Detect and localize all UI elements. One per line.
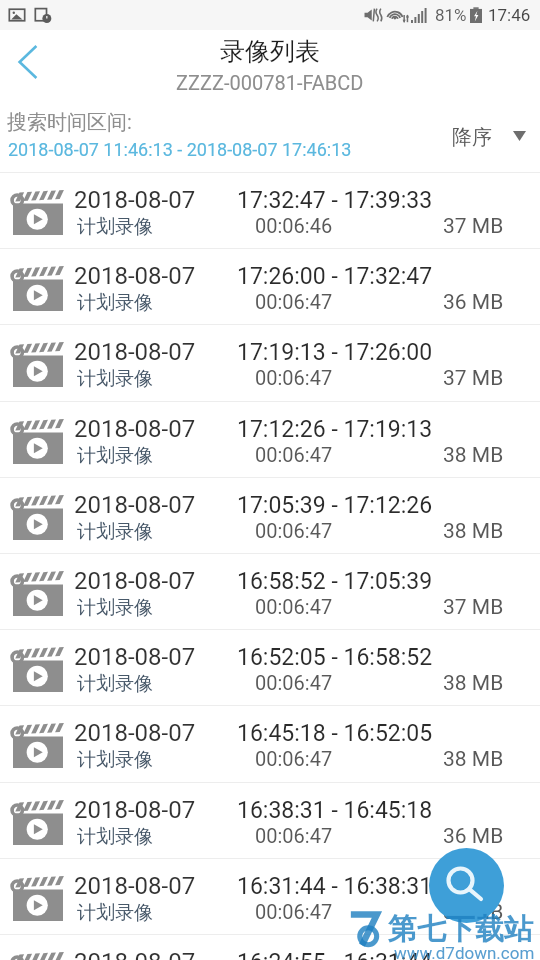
staticText: 2018-08-07 11:46:13 - 2018-08-07 17:46:1…	[8, 139, 352, 160]
staticText: 2018-08-07	[74, 796, 196, 824]
button[interactable]: 降序	[452, 125, 526, 150]
staticText: 16:31:44 - 16:38:31	[237, 873, 433, 900]
staticText: 00:06:46	[255, 214, 333, 237]
staticText: 降序	[452, 125, 492, 150]
staticText: 17:12:26 - 17:19:13	[237, 416, 433, 443]
staticText: 00:06:47	[255, 824, 333, 847]
button[interactable]: Back	[2, 36, 54, 88]
staticText: 计划录像	[77, 596, 153, 620]
staticText: 38 MB	[443, 519, 504, 544]
staticText: 计划录像	[77, 291, 153, 315]
staticText: 00:06:47	[255, 290, 333, 313]
staticText: 第七下载站	[388, 911, 533, 948]
staticText: 2018-08-07	[74, 262, 196, 290]
staticText: 计划录像	[77, 367, 153, 391]
staticText: 16:45:18 - 16:52:05	[237, 720, 433, 747]
button[interactable]: 2018-08-07	[0, 706, 540, 782]
staticText: ZZZZ-000781-FABCD	[176, 71, 364, 94]
button[interactable]: 2018-08-07	[0, 783, 540, 859]
staticText: 17:19:13 - 17:26:00	[237, 339, 433, 366]
staticText: 37 MB	[443, 595, 504, 620]
staticText: www.d7down.com	[394, 943, 535, 960]
staticText: 录像列表	[220, 36, 320, 67]
button[interactable]: 2018-08-07	[0, 402, 540, 478]
staticText: 16:58:52 - 17:05:39	[237, 568, 433, 595]
staticText: 计划录像	[77, 672, 153, 696]
staticText: 2018-08-07	[74, 643, 196, 671]
staticText: 搜索时间区间:	[7, 110, 132, 135]
staticText: 16:52:05 - 16:58:52	[237, 644, 433, 671]
button[interactable]: 2018-08-07	[0, 630, 540, 706]
button[interactable]: 2018-08-07	[0, 935, 540, 960]
staticText: 17:32:47 - 17:39:33	[237, 187, 433, 214]
staticText: 计划录像	[77, 825, 153, 849]
staticText: 38 MB	[443, 900, 504, 925]
staticText: 36 MB	[443, 290, 504, 315]
button[interactable]: 2018-08-07	[0, 859, 540, 935]
staticText: 2018-08-07	[74, 338, 196, 366]
staticText: 38 MB	[443, 443, 504, 468]
staticText: 2018-08-07	[74, 186, 196, 214]
staticText: 16:24:55 - 16:31:44	[237, 949, 433, 960]
staticText: 计划录像	[77, 520, 153, 544]
staticText: 00:06:47	[255, 747, 333, 770]
staticText: 计划录像	[77, 444, 153, 468]
staticText: 38 MB	[443, 747, 504, 772]
staticText: 2018-08-07	[74, 567, 196, 595]
staticText: 00:06:47	[255, 366, 333, 389]
staticText: 2018-08-07	[74, 948, 196, 960]
staticText: 2018-08-07	[74, 719, 196, 747]
button[interactable]: Search	[429, 848, 504, 923]
staticText: 计划录像	[77, 748, 153, 772]
staticText: 17:05:39 - 17:12:26	[237, 492, 433, 519]
staticText: 计划录像	[77, 901, 153, 925]
staticText: 00:06:47	[255, 900, 333, 923]
staticText: 00:06:47	[255, 443, 333, 466]
staticText: 17:26:00 - 17:32:47	[237, 263, 433, 290]
staticText: 2018-08-07	[74, 491, 196, 519]
staticText: 计划录像	[77, 215, 153, 239]
staticText: 2018-08-07	[74, 872, 196, 900]
staticText: 2018-08-07	[74, 415, 196, 443]
button[interactable]: 2018-08-07	[0, 325, 540, 401]
staticText: 38 MB	[443, 671, 504, 696]
button[interactable]: 2018-08-07	[0, 478, 540, 554]
staticText: 17:46	[488, 5, 531, 25]
staticText: 37 MB	[443, 366, 504, 391]
button[interactable]: 2018-08-07	[0, 249, 540, 325]
staticText: 00:06:47	[255, 519, 333, 542]
staticText: 16:38:31 - 16:45:18	[237, 797, 433, 824]
staticText: 00:06:47	[255, 671, 333, 694]
button[interactable]: 2018-08-07	[0, 554, 540, 630]
button[interactable]: 2018-08-07	[0, 173, 540, 249]
staticText: 37 MB	[443, 214, 504, 239]
staticText: 36 MB	[443, 824, 504, 849]
staticText: 81%	[435, 5, 467, 25]
staticText: 00:06:47	[255, 595, 333, 618]
